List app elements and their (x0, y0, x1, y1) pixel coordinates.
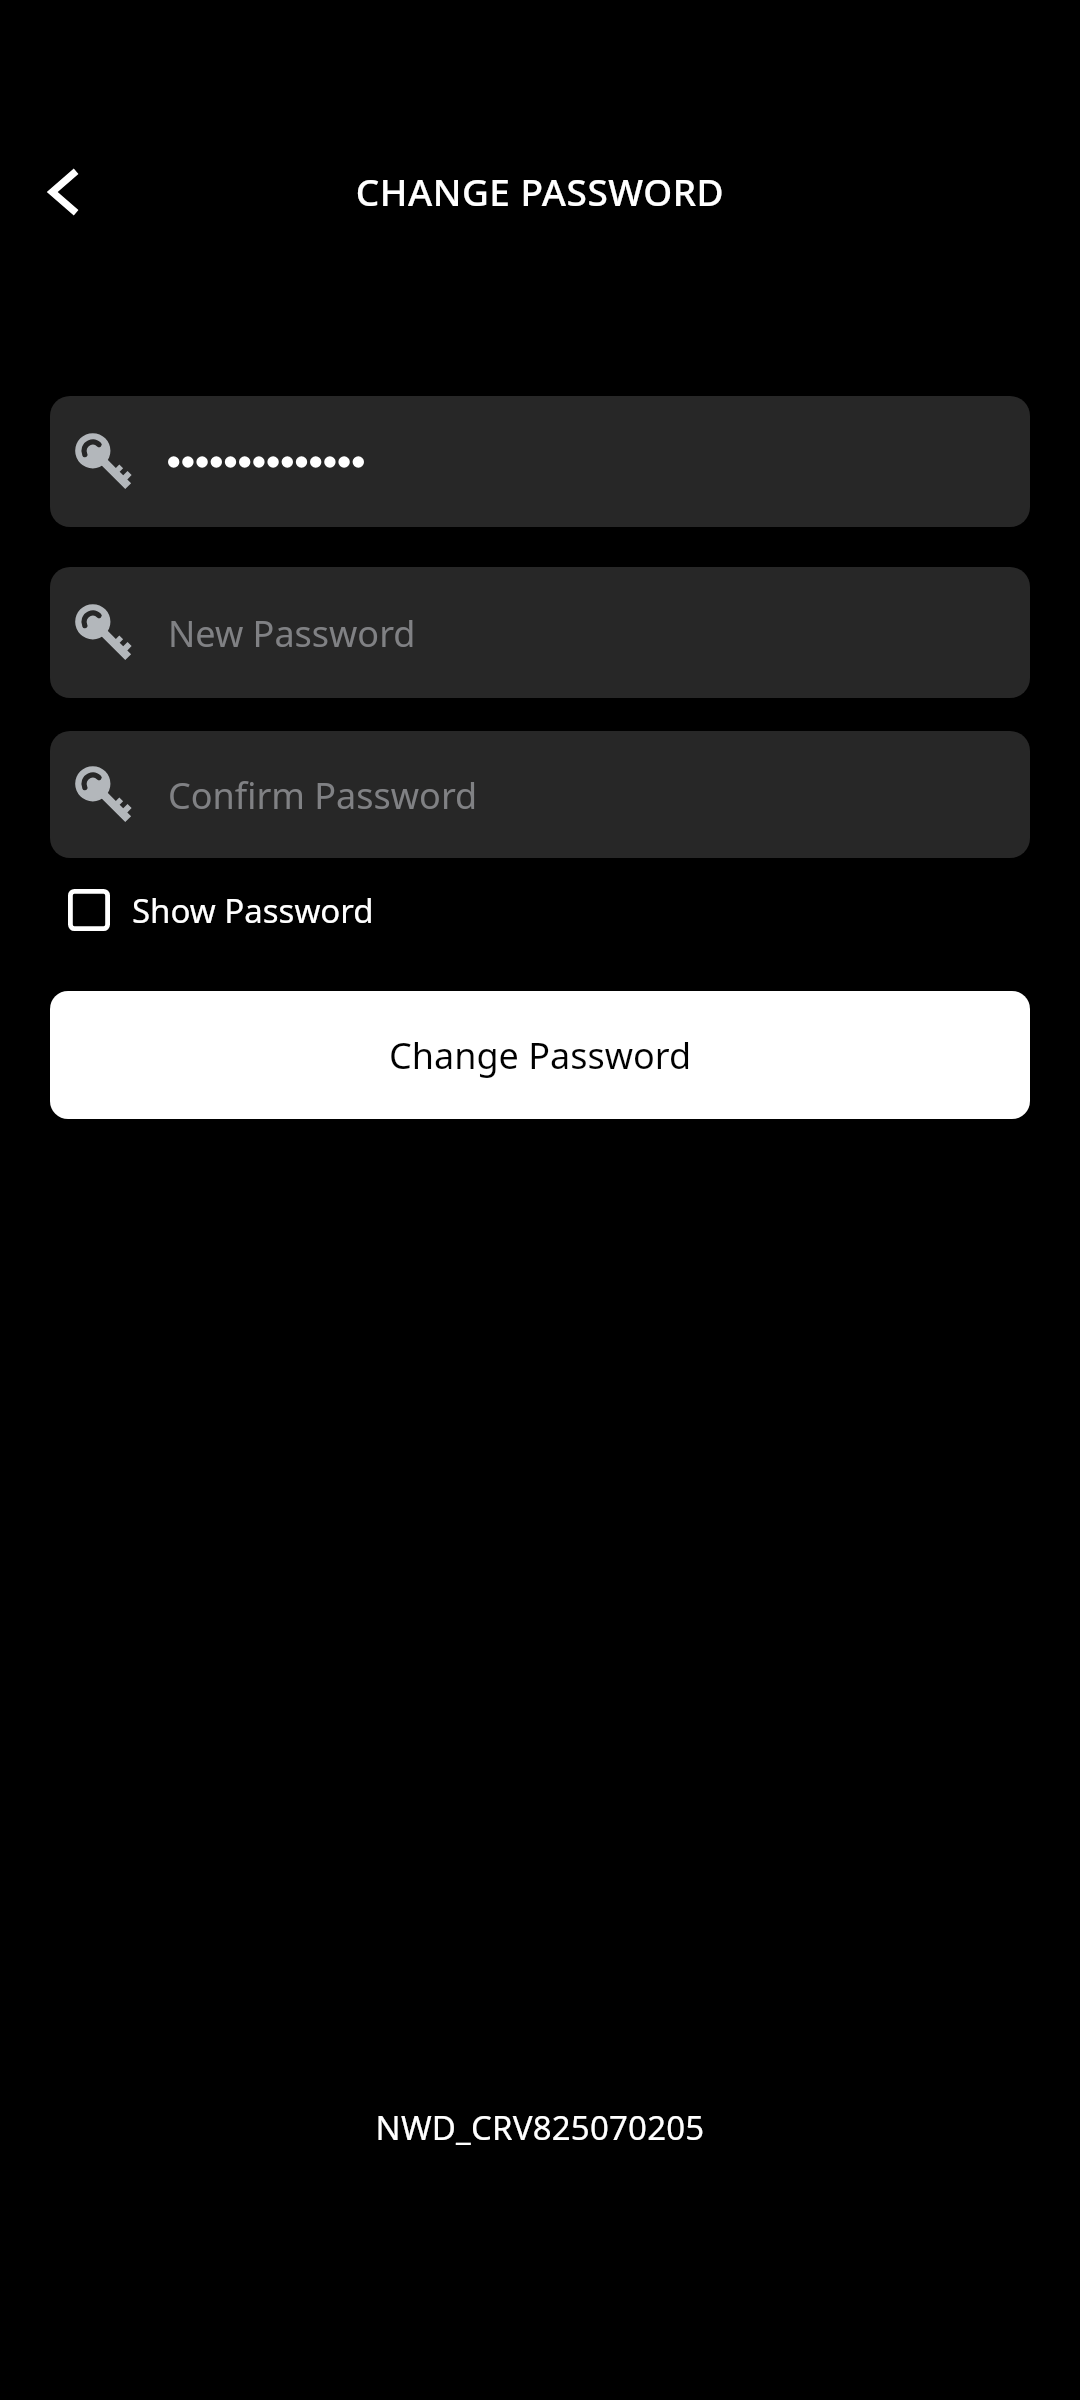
staticText: Change Password (389, 1031, 692, 1080)
staticText: New Password (168, 609, 416, 658)
staticText: CHANGE PASSWORD (0, 166, 1080, 216)
button[interactable]: Back (24, 150, 108, 234)
staticText: NWD_CRV825070205 (0, 2105, 1080, 2150)
button[interactable]: Confirm Password (50, 731, 1030, 858)
button[interactable] (50, 396, 1030, 527)
button[interactable]: Show Password (50, 874, 374, 946)
staticText: Confirm Password (168, 771, 478, 820)
staticText: Show Password (132, 888, 374, 933)
button[interactable]: New Password (50, 567, 1030, 698)
button[interactable]: Change Password (50, 991, 1030, 1119)
